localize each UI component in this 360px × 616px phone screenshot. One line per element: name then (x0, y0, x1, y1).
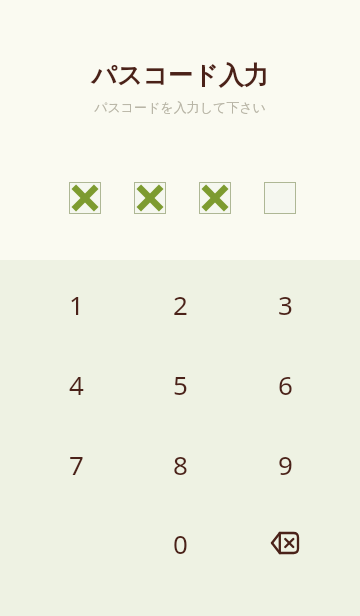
staticText: 8 (173, 447, 188, 482)
staticText: 9 (278, 447, 293, 482)
button[interactable]: 4 (36, 352, 116, 416)
staticText: 1 (69, 287, 84, 322)
staticText: 2 (173, 287, 188, 322)
button[interactable]: 8 (140, 432, 220, 496)
button[interactable]: 6 (245, 352, 325, 416)
button[interactable]: 9 (245, 432, 325, 496)
button[interactable]: 7 (36, 432, 116, 496)
staticText: 3 (278, 287, 293, 322)
button[interactable]: Backspace (245, 511, 325, 575)
staticText: 4 (69, 367, 84, 402)
staticText: 5 (173, 367, 188, 402)
staticText: パスコード入力 (91, 60, 269, 91)
button[interactable]: 3 (245, 272, 325, 336)
staticText: パスコードを入力して下さい (94, 99, 266, 115)
staticText: 0 (173, 526, 188, 561)
button[interactable]: 2 (140, 272, 220, 336)
button[interactable]: 1 (36, 272, 116, 336)
staticText: 6 (278, 367, 293, 402)
button[interactable]: 0 (140, 511, 220, 575)
staticText: 7 (69, 447, 84, 482)
button[interactable]: 5 (140, 352, 220, 416)
